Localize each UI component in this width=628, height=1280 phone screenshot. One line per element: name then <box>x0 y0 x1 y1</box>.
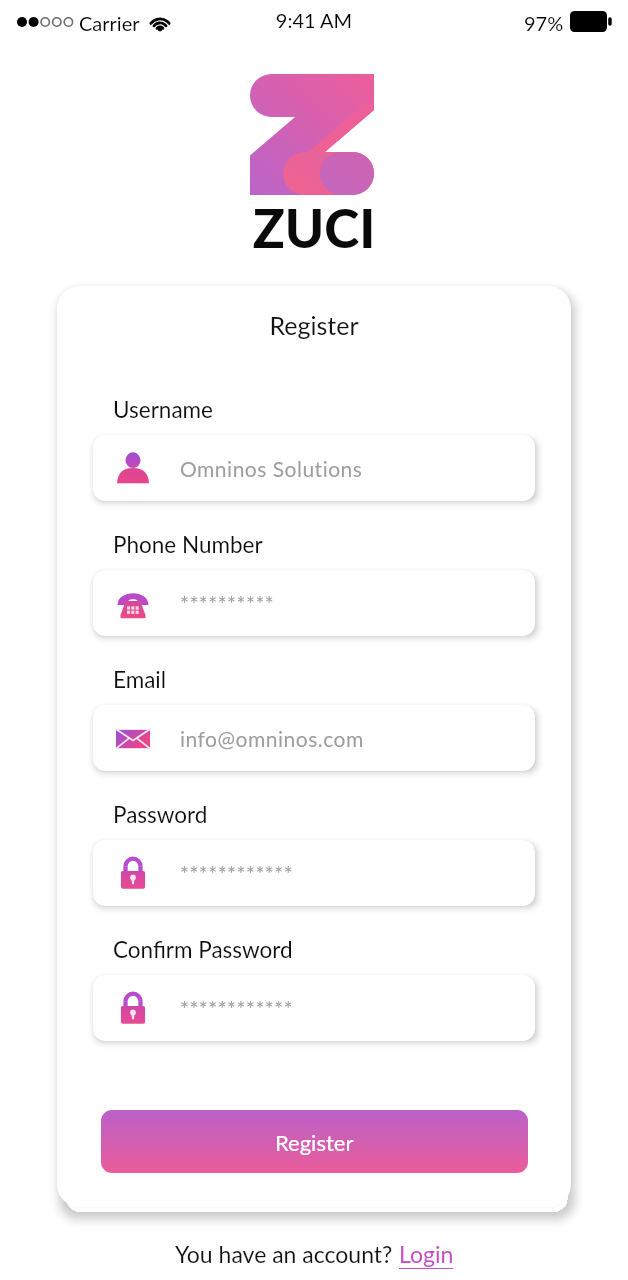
button[interactable]: info@omninos.com <box>93 705 535 771</box>
staticText: ********** <box>180 591 275 616</box>
staticText: 9:41 AM <box>0 8 628 32</box>
staticText: You have an account? <box>175 1240 399 1268</box>
staticText: info@omninos.com <box>180 726 364 751</box>
staticText: Username <box>113 396 213 423</box>
button[interactable]: ********** <box>93 570 535 636</box>
staticText: Email <box>113 666 167 693</box>
staticText: Confirm Password <box>113 936 293 963</box>
staticText: Register <box>57 310 571 340</box>
staticText: 97% <box>524 11 564 35</box>
button[interactable]: ************ <box>93 975 535 1041</box>
button[interactable]: Login <box>399 1240 454 1268</box>
button[interactable]: Register <box>101 1110 528 1173</box>
staticText: Password <box>113 801 208 828</box>
staticText: ************ <box>180 996 294 1021</box>
staticText: Carrier <box>79 11 140 35</box>
staticText: ZUCI <box>0 196 628 260</box>
staticText: ************ <box>180 861 294 886</box>
staticText: Register <box>275 1129 354 1155</box>
button[interactable]: ************ <box>93 840 535 906</box>
button[interactable]: Omninos Solutions <box>93 435 535 501</box>
staticText: Omninos Solutions <box>180 456 363 481</box>
staticText: Phone Number <box>113 531 263 558</box>
